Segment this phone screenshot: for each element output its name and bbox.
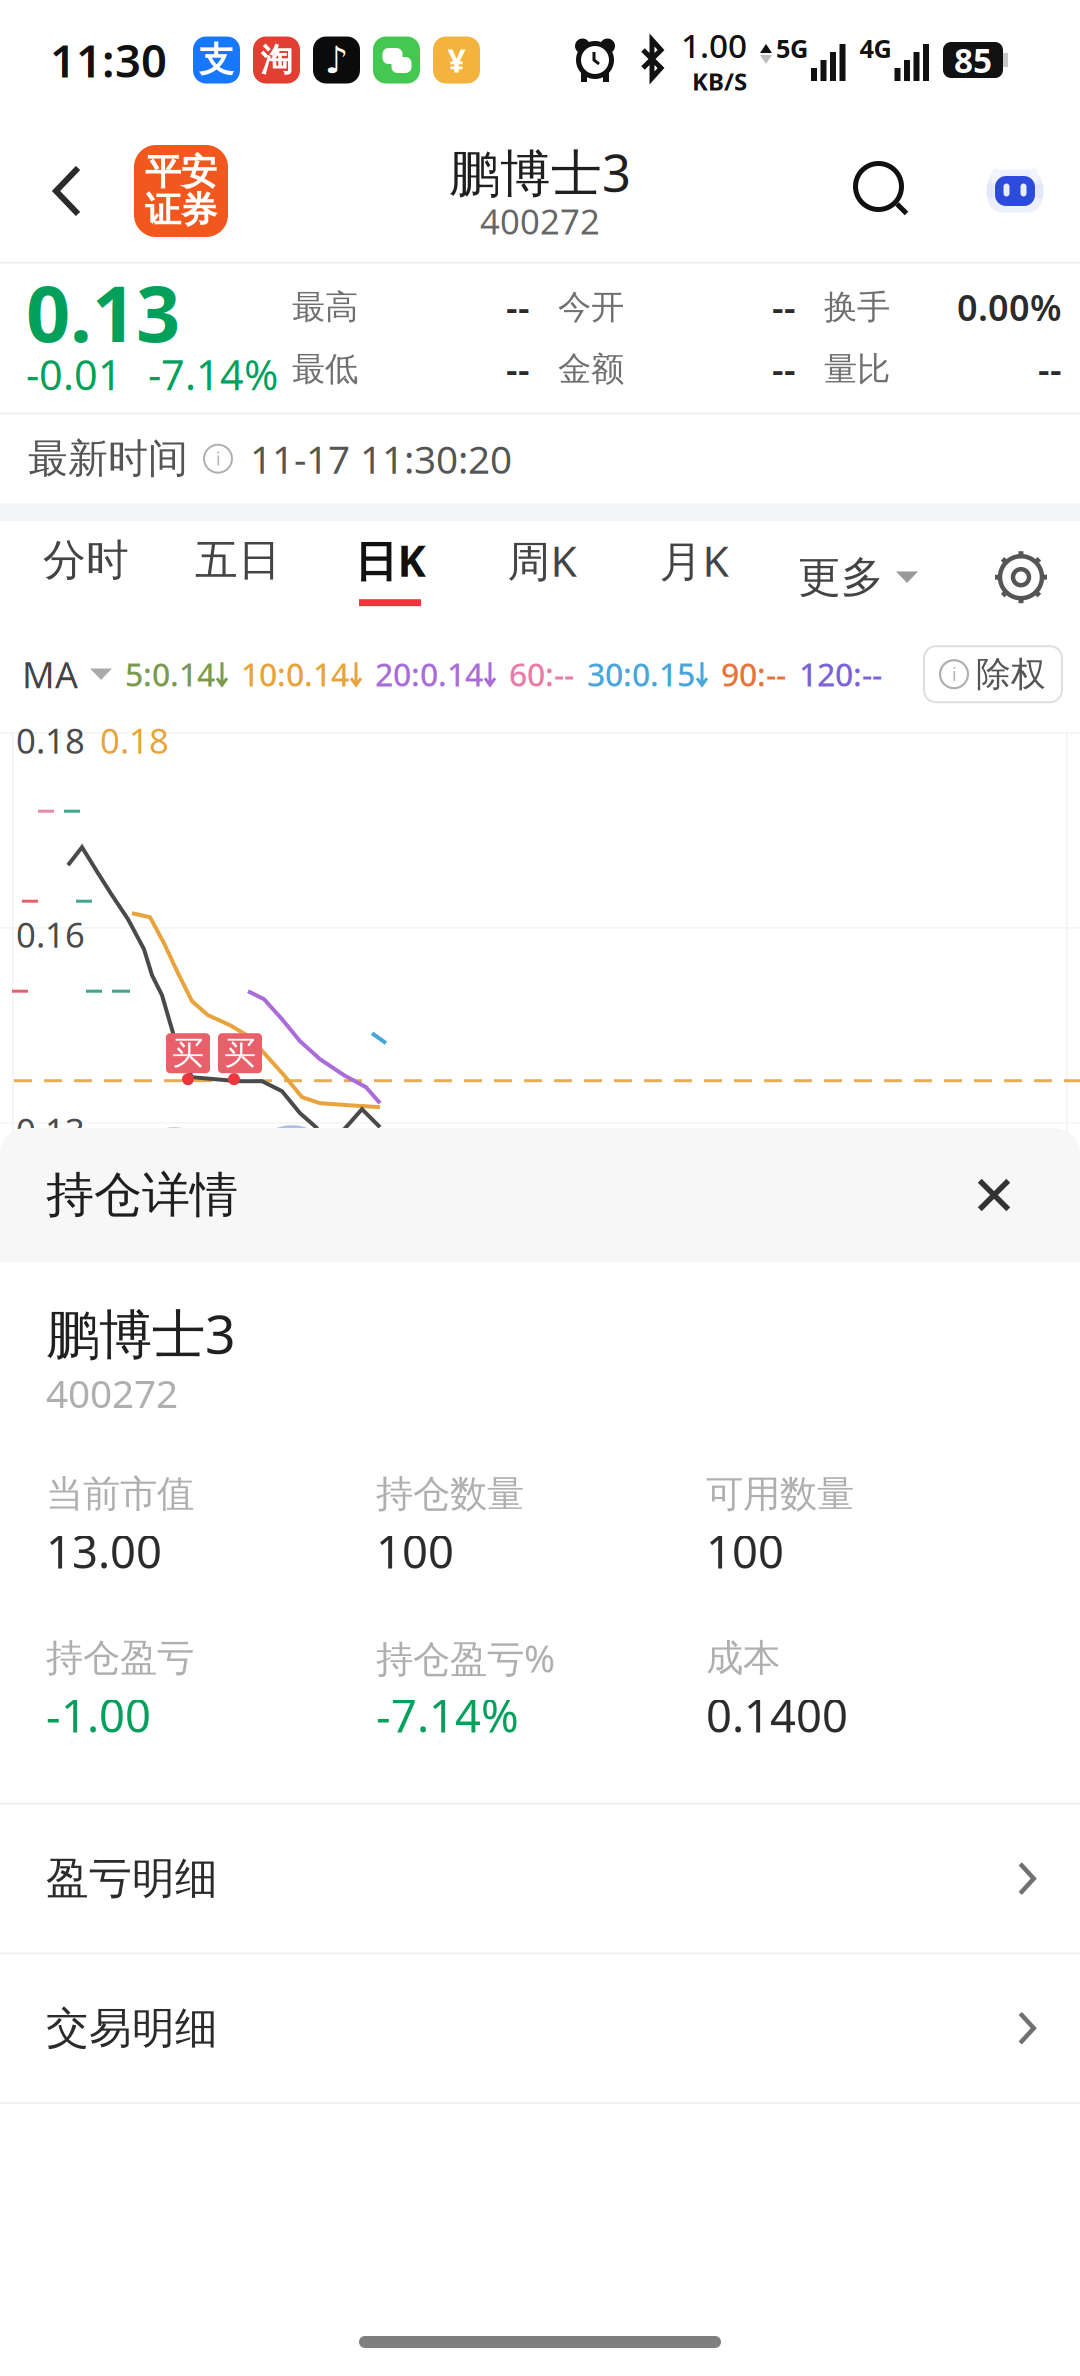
staticText: KB/S [692, 65, 747, 97]
button[interactable]: Chart settings [976, 521, 1066, 633]
button[interactable]: Ping An Securities [134, 145, 228, 237]
staticText: -7.14% [376, 1685, 519, 1745]
staticText: -7.14% [148, 347, 278, 402]
staticText: 鹏博士3 [449, 138, 631, 206]
staticText: 11:30 [50, 30, 167, 90]
staticText: 400272 [46, 1367, 178, 1419]
staticText: 85 [954, 38, 992, 82]
staticText: i [952, 663, 956, 686]
staticText: 90:-- [721, 653, 786, 695]
staticText: 交易明细 [46, 2002, 218, 2054]
staticText: 淘 [260, 40, 292, 80]
staticText: 100 [706, 1521, 784, 1581]
staticText: 当前市值 [46, 1471, 194, 1517]
staticText: 五日 [195, 534, 281, 586]
staticText: i [216, 447, 220, 470]
button[interactable]: Back [0, 128, 134, 254]
staticText: 持仓数量 [376, 1471, 524, 1517]
staticText: 最新时间 [28, 434, 188, 483]
staticText: -- [506, 345, 530, 393]
staticText: 5:0.14 [125, 653, 215, 695]
staticText: 持仓盈亏 [46, 1635, 194, 1681]
staticText: 30:0.15 [587, 653, 695, 695]
staticText: 100 [376, 1521, 454, 1581]
staticText: 11-17 11:30:20 [250, 433, 512, 484]
staticText: -1.00 [46, 1685, 151, 1745]
button[interactable]: 日K [314, 521, 466, 633]
staticText: 买 [172, 1033, 204, 1073]
staticText: 分时 [43, 534, 129, 586]
button[interactable]: Close [946, 1147, 1042, 1243]
staticText: 5G [776, 31, 808, 65]
button[interactable]: Assistant [950, 128, 1080, 254]
button[interactable]: i [924, 646, 1062, 702]
staticText: 量比 [824, 349, 890, 389]
staticText: 持仓盈亏% [376, 1633, 555, 1683]
button[interactable]: 更多 [770, 521, 946, 633]
button[interactable]: 月K [618, 521, 770, 633]
staticText: 月K [659, 532, 728, 589]
staticText: 1.00 [681, 23, 747, 67]
staticText: 0.13 [16, 1107, 85, 1153]
staticText: 周K [507, 532, 576, 589]
staticText: 金额 [558, 349, 624, 389]
staticText: -- [1038, 345, 1062, 393]
staticText: -- [772, 345, 796, 393]
button[interactable]: 交易明细 [0, 1954, 1080, 2102]
button[interactable]: 分时 [10, 521, 162, 633]
staticText: -- [506, 283, 530, 331]
staticText: 0.16 [16, 911, 85, 957]
staticText: 10:0.14 [241, 653, 349, 695]
staticText: -- [772, 283, 796, 331]
button[interactable]: 周K [466, 521, 618, 633]
staticText: 证券 [145, 188, 217, 232]
staticText: -0.01 [26, 347, 122, 402]
staticText: 最高 [292, 287, 358, 327]
staticText: 更多 [798, 551, 884, 603]
staticText: 0.1400 [706, 1685, 848, 1745]
staticText: 20:0.14 [375, 653, 483, 695]
staticText: 除权 [976, 653, 1046, 695]
staticText: 成本 [706, 1635, 780, 1681]
staticText: 最低 [292, 349, 358, 389]
staticText: 60:-- [509, 653, 574, 695]
staticText: ♪ [324, 39, 348, 81]
button[interactable]: 五日 [162, 521, 314, 633]
staticText: 0.18 [16, 717, 85, 763]
staticText: 今开 [558, 287, 624, 327]
staticText: 换手 [824, 287, 890, 327]
staticText: 4G [859, 31, 891, 65]
staticText: 平安 [145, 150, 217, 194]
staticText: ¥ [447, 39, 465, 81]
staticText: 鹏博士3 [46, 1298, 236, 1368]
staticText: 支 [199, 39, 234, 81]
staticText: 可用数量 [706, 1471, 854, 1517]
staticText: MA [22, 650, 78, 698]
staticText: 盈亏明细 [46, 1852, 218, 1905]
staticText: 日K [354, 532, 425, 589]
staticText: 买 [224, 1033, 256, 1073]
button[interactable]: 盈亏明细 [0, 1805, 1080, 1953]
staticText: 持仓详情 [46, 1165, 238, 1224]
staticText: 0.00% [957, 283, 1062, 331]
staticText: 13.00 [46, 1521, 162, 1581]
staticText: 0.13 [26, 261, 180, 363]
button[interactable]: Search [816, 128, 950, 254]
staticText: 120:-- [799, 653, 882, 695]
staticText: 0.18 [100, 717, 169, 763]
staticText: 400272 [480, 198, 600, 244]
